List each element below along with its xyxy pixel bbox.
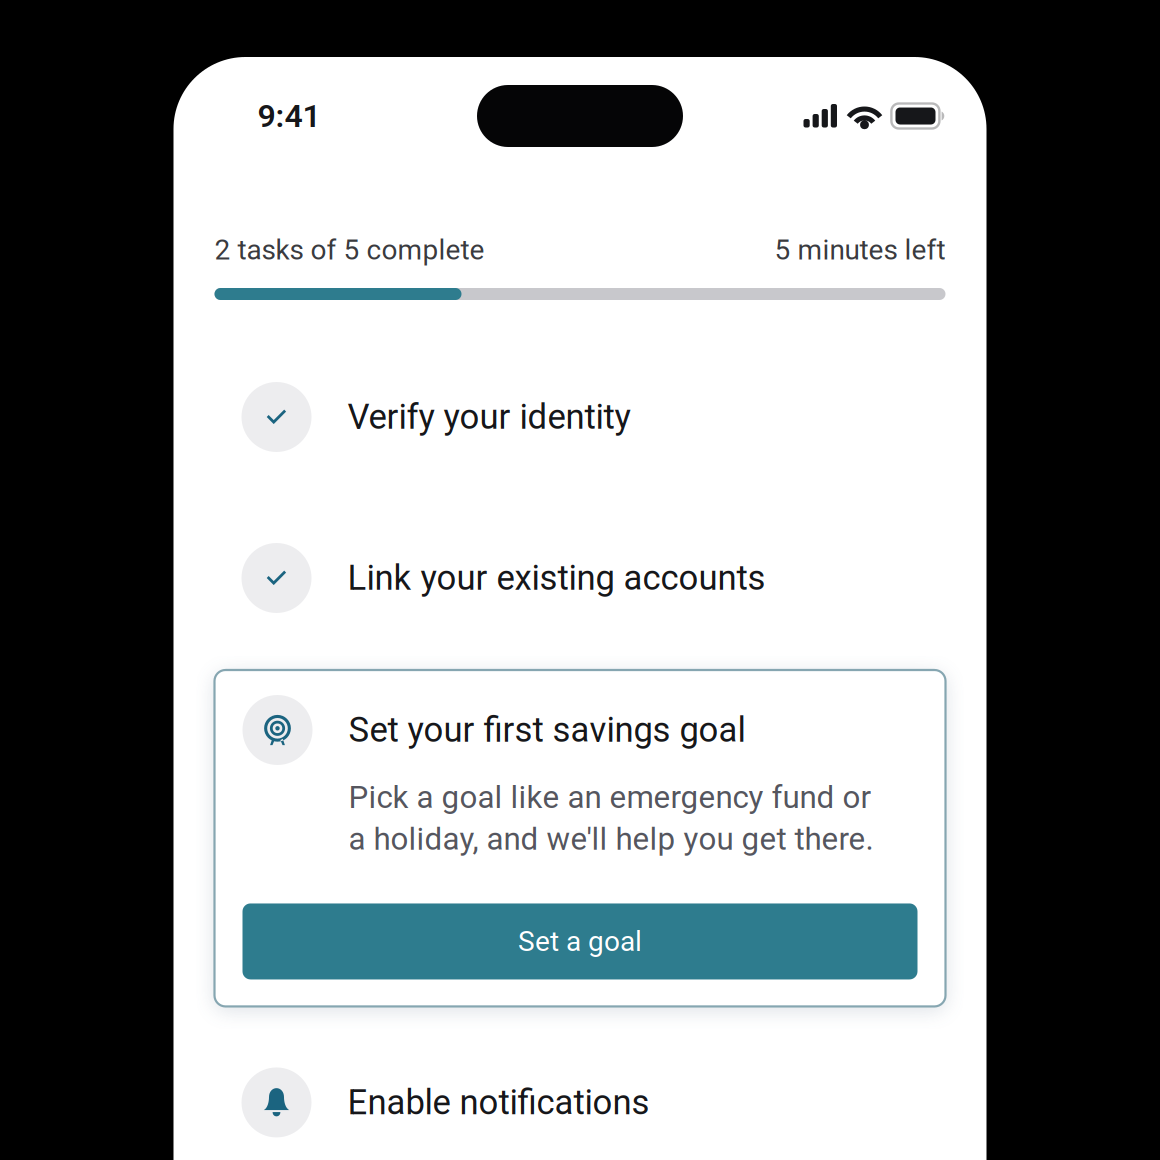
button[interactable]: Set a goal <box>242 903 917 979</box>
button[interactable]: Enable notifications <box>173 1067 986 1137</box>
button[interactable]: Verify your identity <box>173 382 986 452</box>
staticText: Set your first savings goal <box>348 710 745 750</box>
staticText: 9:41 <box>257 97 320 135</box>
staticText: 2 tasks of 5 complete <box>214 234 484 266</box>
staticText: Enable notifications <box>347 1082 649 1123</box>
staticText: 5 minutes left <box>774 234 945 266</box>
staticText: Link your existing accounts <box>347 558 765 598</box>
button[interactable]: Link your existing accounts <box>173 543 986 613</box>
staticText: Verify your identity <box>347 397 630 437</box>
staticText: Set a goal <box>518 925 642 958</box>
staticText: Pick a goal like an emergency fund or a … <box>348 779 873 857</box>
